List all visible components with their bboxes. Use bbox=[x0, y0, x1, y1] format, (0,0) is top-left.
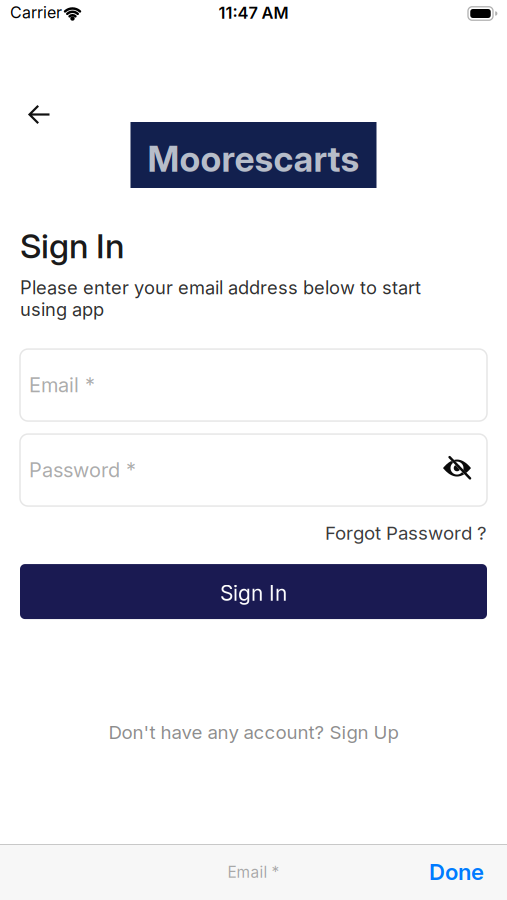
button[interactable]: Sign In bbox=[20, 564, 487, 619]
staticText: Password * bbox=[29, 458, 136, 482]
staticText: Email * bbox=[227, 863, 279, 881]
staticText: Moorescarts bbox=[147, 138, 359, 180]
button[interactable]: Forgot Password ? bbox=[325, 522, 487, 544]
staticText: Forgot Password ? bbox=[325, 522, 487, 544]
staticText: Don't have any account? Sign Up bbox=[108, 721, 398, 743]
staticText: 11:47 AM bbox=[218, 3, 288, 22]
button[interactable] bbox=[20, 95, 59, 133]
staticText: Sign In bbox=[220, 581, 287, 605]
button[interactable]: Done bbox=[429, 859, 507, 885]
staticText: Email * bbox=[29, 373, 95, 397]
staticText: Carrier bbox=[10, 3, 62, 22]
staticText: Done bbox=[429, 859, 484, 885]
button[interactable]: Password * bbox=[20, 434, 487, 506]
button[interactable]: Email * bbox=[20, 349, 487, 421]
staticText: Please enter your email address below to… bbox=[20, 277, 421, 320]
staticText: Sign In bbox=[20, 226, 124, 266]
button[interactable]: Don't have any account? Sign Up bbox=[108, 721, 398, 743]
